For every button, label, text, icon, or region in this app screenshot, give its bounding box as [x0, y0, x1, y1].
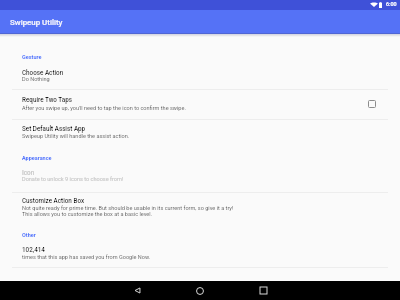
button[interactable]: Home	[190, 281, 210, 300]
staticText: Choose Action	[22, 69, 64, 76]
button[interactable]	[0, 91, 400, 119]
staticText: times that this app has saved you from G…	[22, 254, 151, 261]
button[interactable]: Recent apps	[253, 281, 273, 300]
staticText: Appearance	[22, 155, 52, 161]
staticText: Icon	[22, 169, 35, 176]
staticText: Donate to unlock 9 icons to choose from!	[22, 176, 124, 183]
staticText: This allows you to customize the box at …	[22, 211, 153, 218]
staticText: Gesture	[22, 54, 42, 60]
staticText: Do Nothing	[22, 76, 50, 83]
staticText: Swipeup Utility	[10, 18, 63, 27]
button[interactable]	[0, 64, 400, 89]
button[interactable]	[0, 193, 400, 221]
button[interactable]	[0, 120, 400, 144]
staticText: 102,414	[22, 246, 45, 253]
button[interactable]: Back	[127, 281, 147, 300]
staticText: After you swipe up, you'll need to tap t…	[22, 105, 186, 112]
button[interactable]	[0, 166, 400, 192]
staticText: Swipeup Utility will handle the assist a…	[22, 133, 130, 140]
staticText: Other	[22, 232, 36, 238]
staticText: Set Default Assist App	[22, 125, 86, 132]
staticText: Require Two Taps	[22, 96, 72, 103]
staticText: 6:00	[386, 1, 397, 7]
staticText: Customize Action Box	[22, 197, 85, 204]
staticText: Not quite ready for prime time. But shou…	[22, 205, 234, 212]
button[interactable]	[0, 242, 400, 266]
